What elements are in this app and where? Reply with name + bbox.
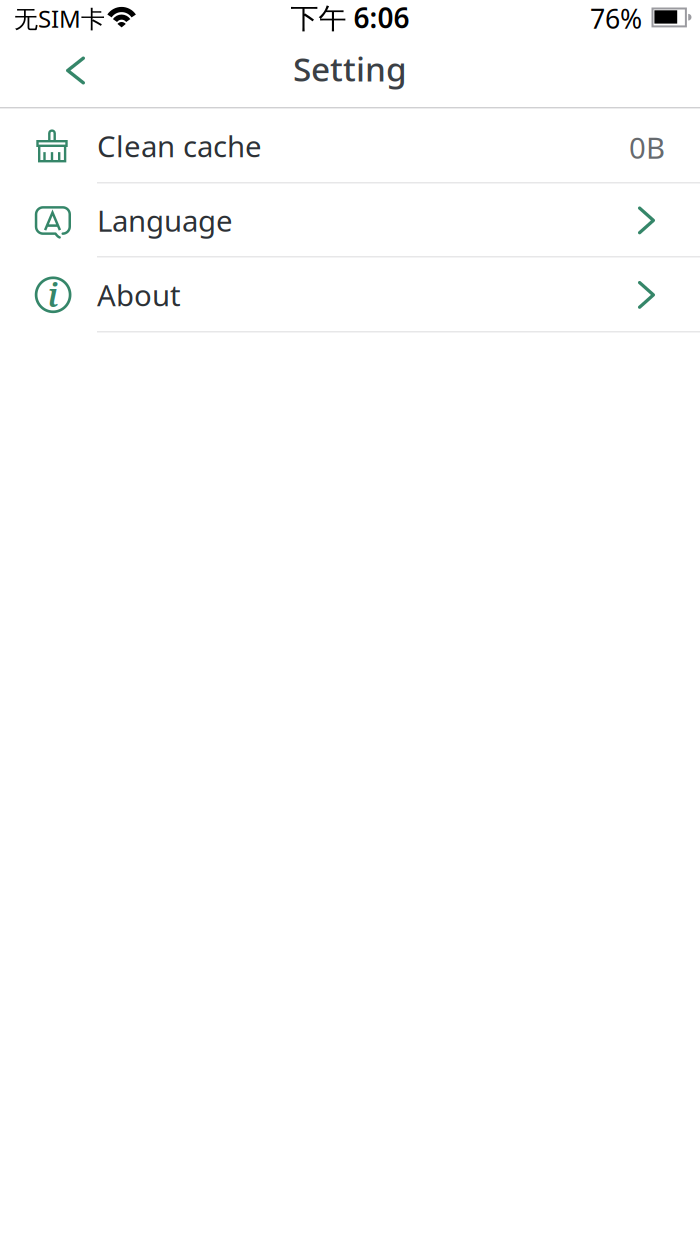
staticText: Clean cache (97, 126, 262, 165)
button[interactable]: Clean cache (0, 108, 700, 183)
staticText: i (48, 273, 59, 316)
staticText: Setting (293, 46, 407, 91)
button[interactable]: Back (0, 42, 115, 102)
staticText: About (97, 275, 181, 314)
button[interactable]: Language (0, 183, 700, 257)
button[interactable]: i (0, 257, 700, 332)
staticText: 76% (590, 1, 642, 36)
staticText: Language (97, 201, 233, 240)
staticText: 下午 6:06 (290, 0, 409, 36)
staticText: 无SIM卡 (14, 3, 105, 34)
staticText: 0B (629, 128, 665, 167)
